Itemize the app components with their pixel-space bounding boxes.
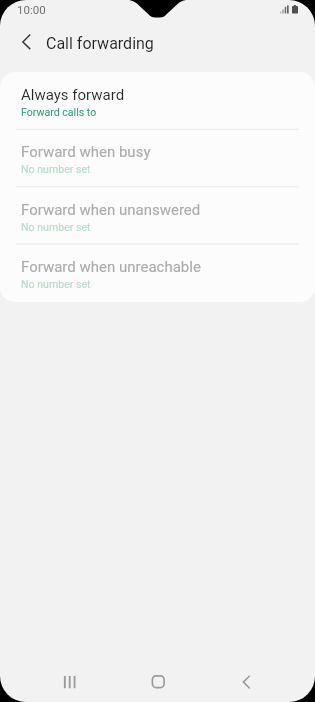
staticText: Forward when busy — [21, 143, 151, 161]
staticText: Forward when unanswered — [21, 201, 201, 219]
staticText: No number set — [21, 221, 91, 233]
button[interactable]: Always forward — [0, 72, 315, 129]
button[interactable]: Home — [113, 662, 201, 702]
staticText: Call forwarding — [46, 34, 154, 53]
button[interactable]: Navigate up — [8, 23, 46, 61]
staticText: Forward when unreachable — [21, 258, 201, 276]
staticText: No number set — [21, 278, 91, 290]
staticText: 10:00 — [17, 3, 46, 16]
button[interactable]: Forward when busy — [0, 129, 315, 186]
button[interactable]: Recent apps — [26, 662, 113, 702]
button[interactable]: Back — [201, 662, 289, 702]
staticText: Always forward — [21, 86, 125, 104]
staticText: Forward calls to — [21, 106, 97, 118]
button[interactable]: Forward when unanswered — [0, 187, 315, 244]
staticText: No number set — [21, 163, 91, 175]
button[interactable]: Forward when unreachable — [0, 244, 315, 301]
